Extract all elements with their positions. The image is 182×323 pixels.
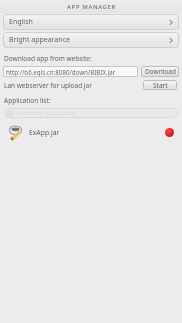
button[interactable]: Download [141, 66, 179, 77]
staticText: Start [153, 81, 168, 90]
button[interactable]: English [3, 14, 179, 30]
staticText: Bright appearance [9, 35, 70, 45]
button[interactable]: ExApp.jar [0, 121, 182, 143]
staticText: APP MANAGER [67, 3, 116, 11]
button[interactable]: http://b6.egls.cn:8080/down/BIBIX.jar [3, 66, 138, 77]
staticText: Lan webserver for upload jar [4, 81, 92, 90]
button[interactable]: Search [4, 108, 178, 118]
other: Search [7, 111, 12, 116]
button[interactable]: Bright appearance [3, 32, 179, 48]
button[interactable]: Start [143, 80, 177, 90]
staticText: Download [145, 67, 176, 76]
staticText: http://b6.egls.cn:8080/down/BIBIX.jar [6, 68, 116, 76]
staticText: Download app from website: [4, 54, 92, 63]
staticText: English [9, 17, 33, 27]
staticText: ExApp.jar [29, 128, 60, 137]
button[interactable]: Delete [165, 128, 174, 137]
staticText: Application list: [4, 96, 51, 105]
staticText: Search for application [15, 109, 77, 117]
